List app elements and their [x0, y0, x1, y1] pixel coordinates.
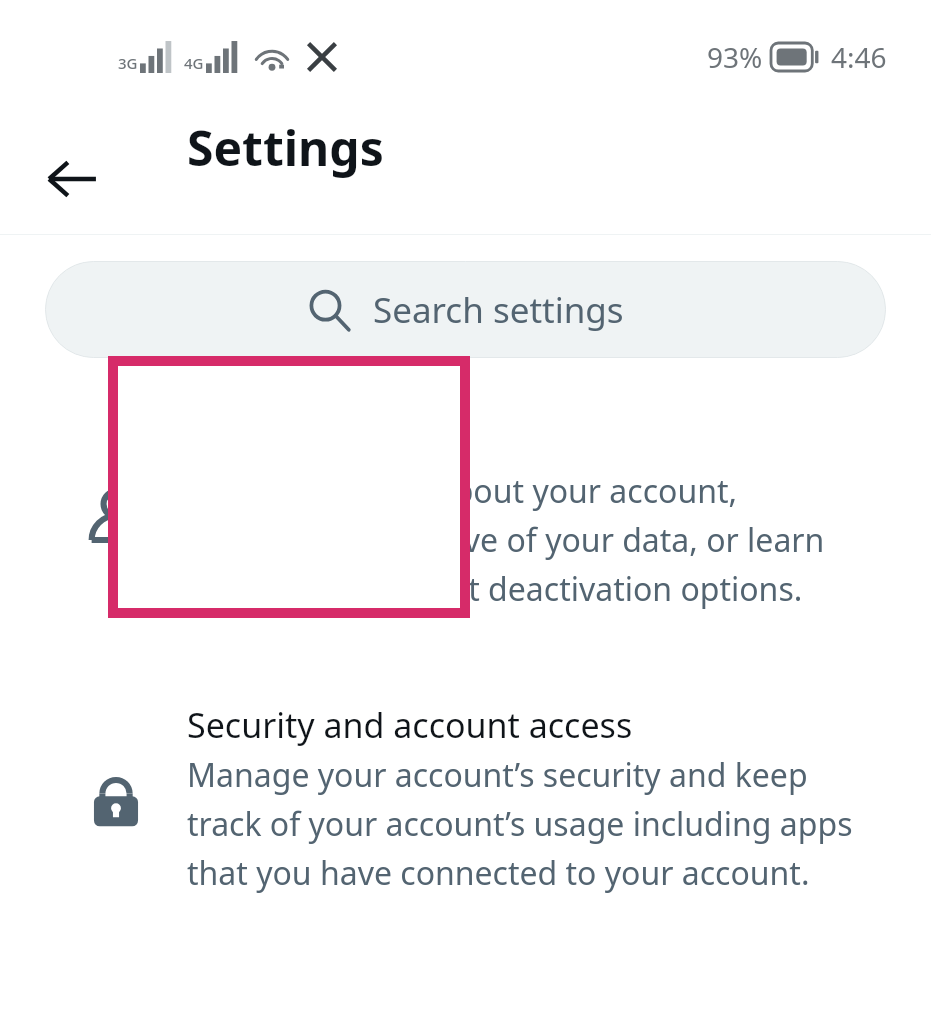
staticText: Search settings	[373, 286, 624, 334]
button[interactable]: Back	[28, 135, 116, 223]
staticText: Manage your account’s security and keep …	[187, 753, 889, 895]
button[interactable]: Security and account access	[0, 702, 931, 902]
staticText: See information about your account, down…	[187, 469, 889, 611]
staticText: 93%	[707, 38, 763, 76]
staticText: 4:46	[831, 38, 887, 76]
staticText: 3G	[118, 53, 138, 73]
button[interactable]: Search settings	[45, 261, 886, 358]
button[interactable]: Your account	[0, 418, 931, 618]
staticText: 4G	[184, 53, 204, 73]
staticText: Security and account access	[187, 702, 633, 748]
staticText: Settings	[187, 115, 384, 180]
